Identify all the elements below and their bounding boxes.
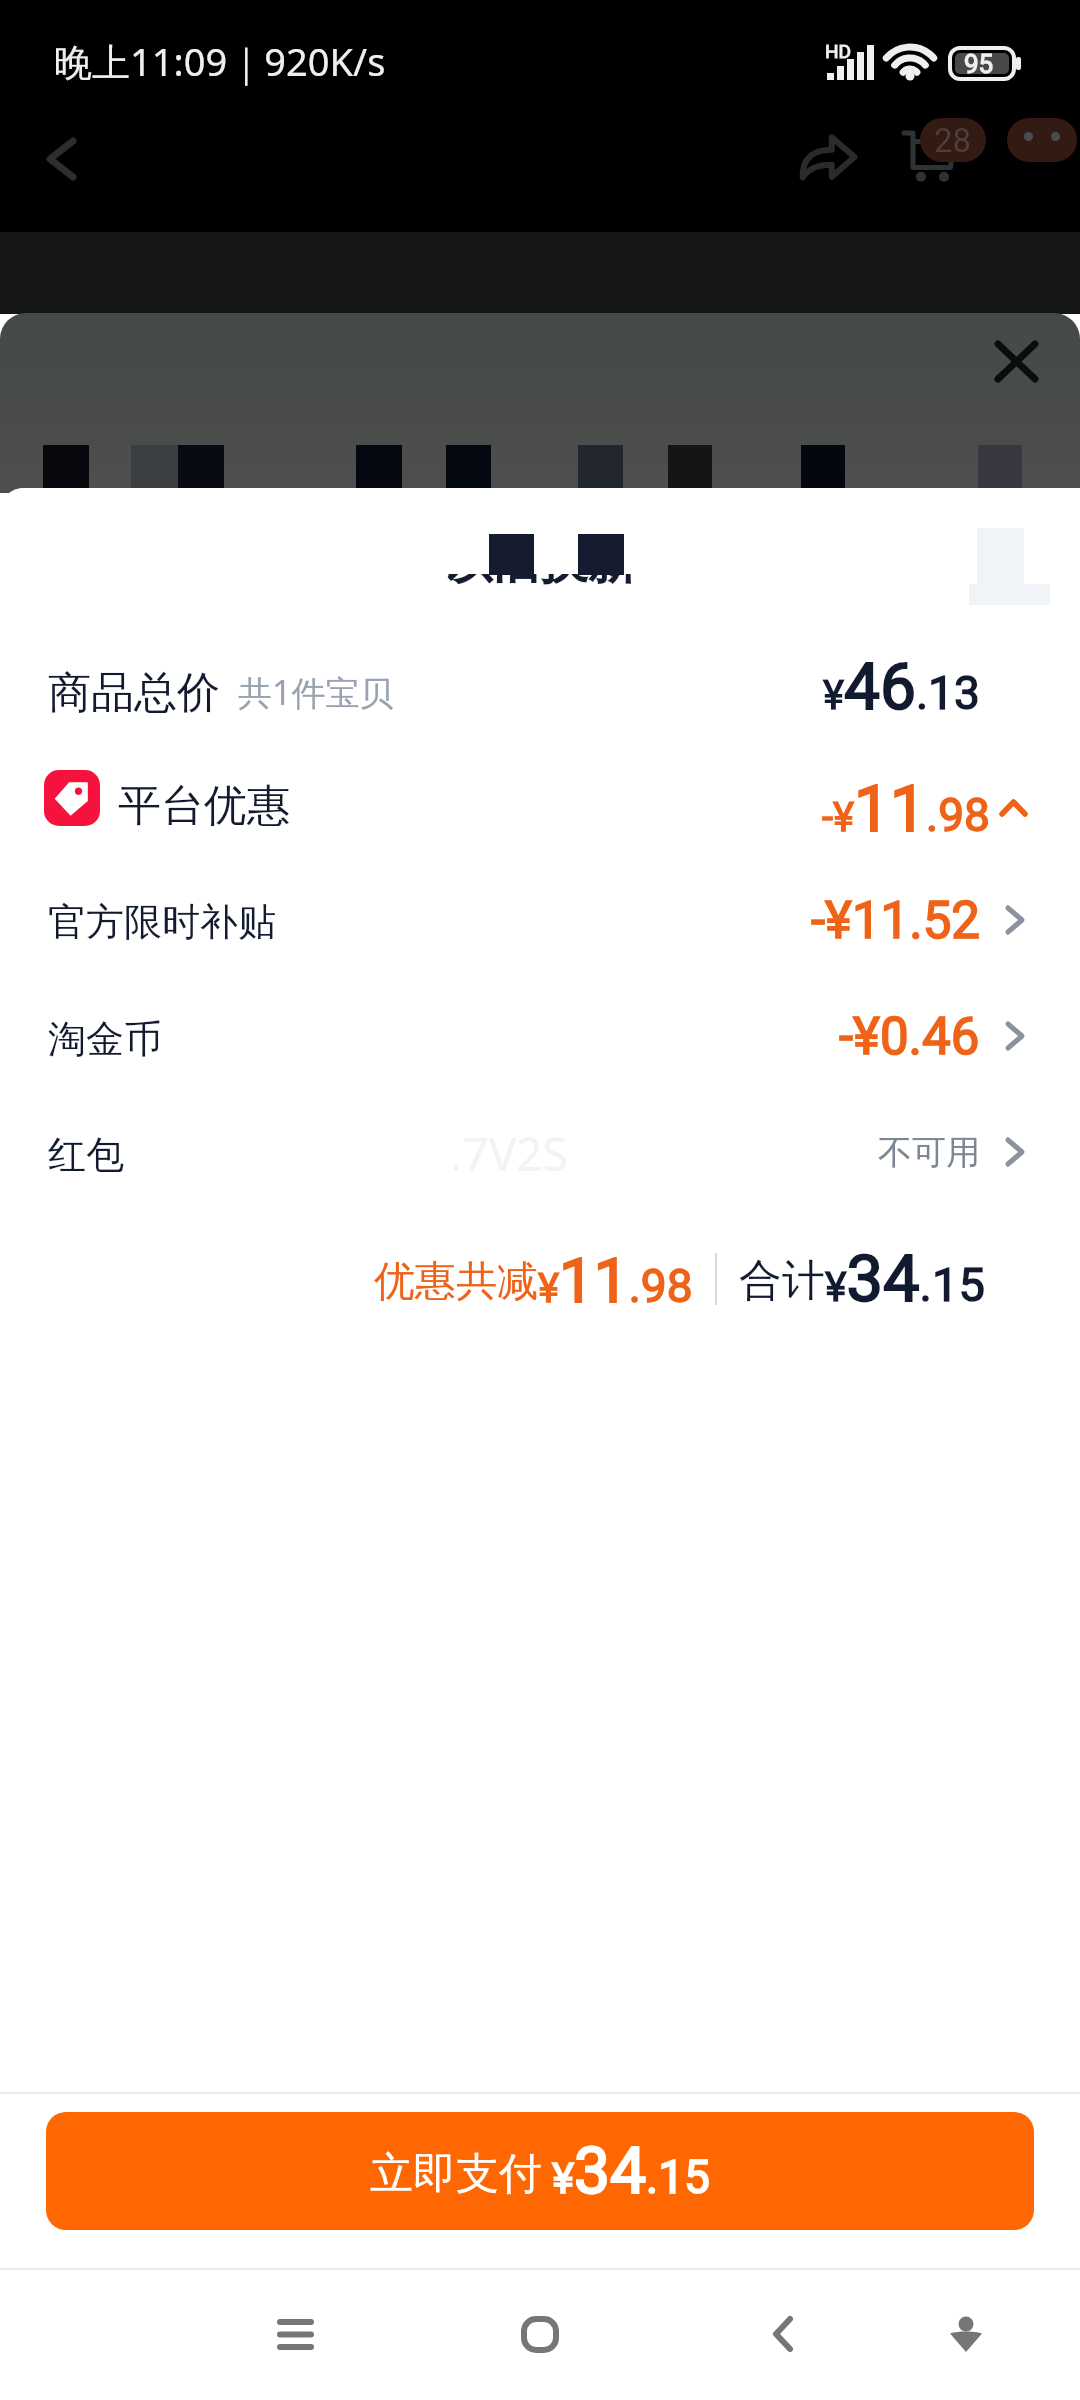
- staticText: 立即支付: [370, 2147, 542, 2201]
- staticText: ¥11.98: [538, 1244, 693, 1317]
- staticText: 95: [964, 49, 994, 79]
- staticText: ¥34.15: [825, 1241, 985, 1317]
- button[interactable]: Home: [476, 2271, 604, 2399]
- button[interactable]: [0, 982, 1080, 1090]
- button[interactable]: [0, 748, 1080, 860]
- staticText: 官方限时补贴: [48, 898, 276, 946]
- staticText: -¥11.52: [811, 891, 980, 951]
- staticText: .7V2S: [450, 1122, 568, 1185]
- staticText: 红包: [48, 1131, 124, 1179]
- staticText: 共1件宝贝: [238, 669, 394, 715]
- staticText: 商品总价: [48, 666, 220, 720]
- staticText: ¥34.15: [552, 2134, 710, 2209]
- button[interactable]: Recent apps: [231, 2271, 359, 2399]
- button[interactable]: Close: [964, 309, 1068, 413]
- staticText: 28: [934, 121, 972, 160]
- staticText: 不可用: [878, 1131, 980, 1174]
- button[interactable]: More options: [1003, 118, 1080, 162]
- staticText: -¥0.46: [839, 1007, 980, 1067]
- button[interactable]: Share: [784, 113, 872, 201]
- button[interactable]: [0, 638, 1080, 746]
- button[interactable]: [0, 1099, 1080, 1207]
- button[interactable]: [0, 866, 1080, 974]
- staticText: ¥46.13: [823, 650, 980, 725]
- button[interactable]: Shopping cart: [884, 112, 972, 200]
- staticText: -¥11.98: [822, 772, 990, 847]
- button[interactable]: 立即支付: [46, 2112, 1034, 2230]
- button[interactable]: Back: [719, 2271, 847, 2399]
- button[interactable]: Hide keyboard: [902, 2271, 1030, 2399]
- staticText: HD: [825, 40, 852, 62]
- staticText: 以旧换新: [444, 532, 636, 592]
- staticText: 淘金币: [48, 1015, 162, 1063]
- staticText: 合计: [739, 1254, 825, 1308]
- button[interactable]: Back: [18, 116, 104, 202]
- staticText: 平台优惠: [118, 779, 290, 833]
- staticText: 晚上11:09｜920K/s: [54, 35, 386, 87]
- staticText: 优惠共减: [374, 1256, 538, 1308]
